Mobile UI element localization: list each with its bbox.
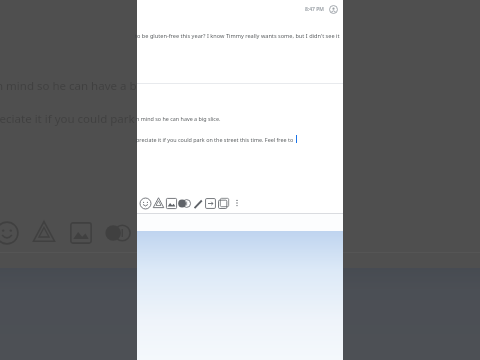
button[interactable]: Insert from Drive: [152, 197, 165, 210]
button[interactable]: Send money: [178, 197, 191, 210]
staticText: to be gluten-free this year? I know Timm…: [135, 32, 340, 40]
staticText: n mind so he can have a big slice.: [136, 115, 221, 122]
button[interactable]: Insert photo: [165, 197, 178, 210]
button[interactable]: Insert emoji: [139, 197, 152, 210]
staticText: preciate it if you could park on the str…: [136, 136, 295, 143]
button[interactable]: Signature: [191, 197, 204, 210]
staticText: preciate it if you could park on the str…: [0, 111, 331, 127]
button[interactable]: Insert file: [217, 197, 230, 210]
staticText: n mind so he can have a big slice.: [0, 78, 177, 94]
button[interactable]: Confidential mode: [204, 197, 217, 210]
button[interactable]: Account: [329, 5, 338, 14]
button[interactable]: More options: [232, 198, 242, 208]
staticText: 8:47 PM: [305, 6, 324, 13]
